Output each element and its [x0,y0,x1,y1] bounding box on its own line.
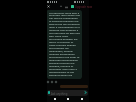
button[interactable]: Back [52,96,57,101]
button[interactable]: Attach [60,5,62,7]
button[interactable]: Account [71,5,74,8]
button[interactable]: Home [65,96,70,101]
button[interactable]: Menu [65,6,68,9]
button[interactable]: Ask anything [47,90,88,96]
button[interactable]: Recents [79,96,84,101]
staticText: Conceptually there exist a boundary laye… [49,11,80,78]
button[interactable]: Conceptually there exist a boundary laye… [47,10,82,79]
staticText: Ask anything [51,92,68,96]
button[interactable]: Send [84,91,87,94]
staticText: Upgrade now [75,5,93,9]
button[interactable]: Close [47,5,50,8]
